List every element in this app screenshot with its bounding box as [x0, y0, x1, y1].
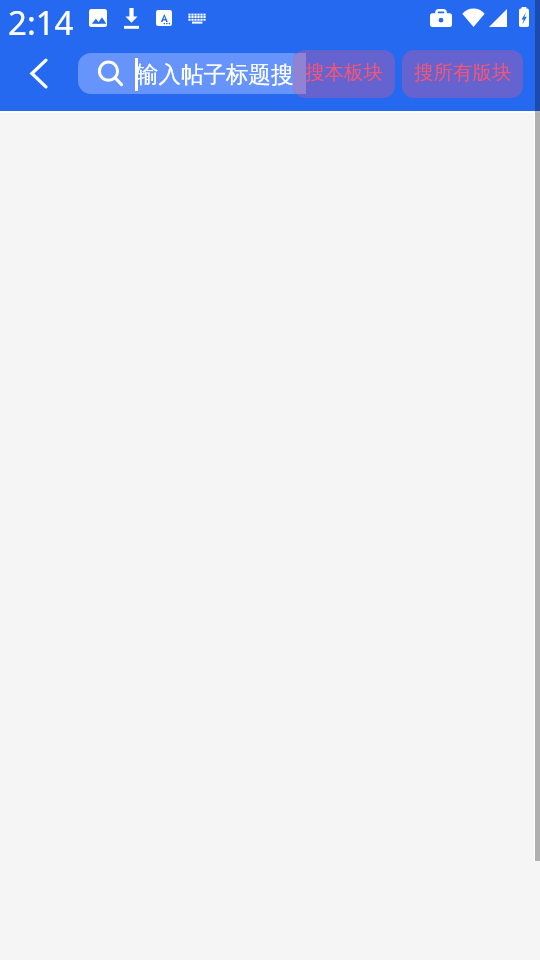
staticText: 搜本板块: [305, 60, 383, 85]
staticText: 2:14: [8, 0, 74, 40]
button[interactable]: Back: [10, 46, 66, 104]
button[interactable]: 输入帖子标题搜索: [78, 53, 306, 94]
staticText: 搜所有版块: [414, 60, 512, 85]
button[interactable]: 搜所有版块: [402, 50, 523, 98]
staticText: 输入帖子标题搜索: [136, 60, 306, 88]
button[interactable]: 搜本板块: [293, 50, 395, 98]
